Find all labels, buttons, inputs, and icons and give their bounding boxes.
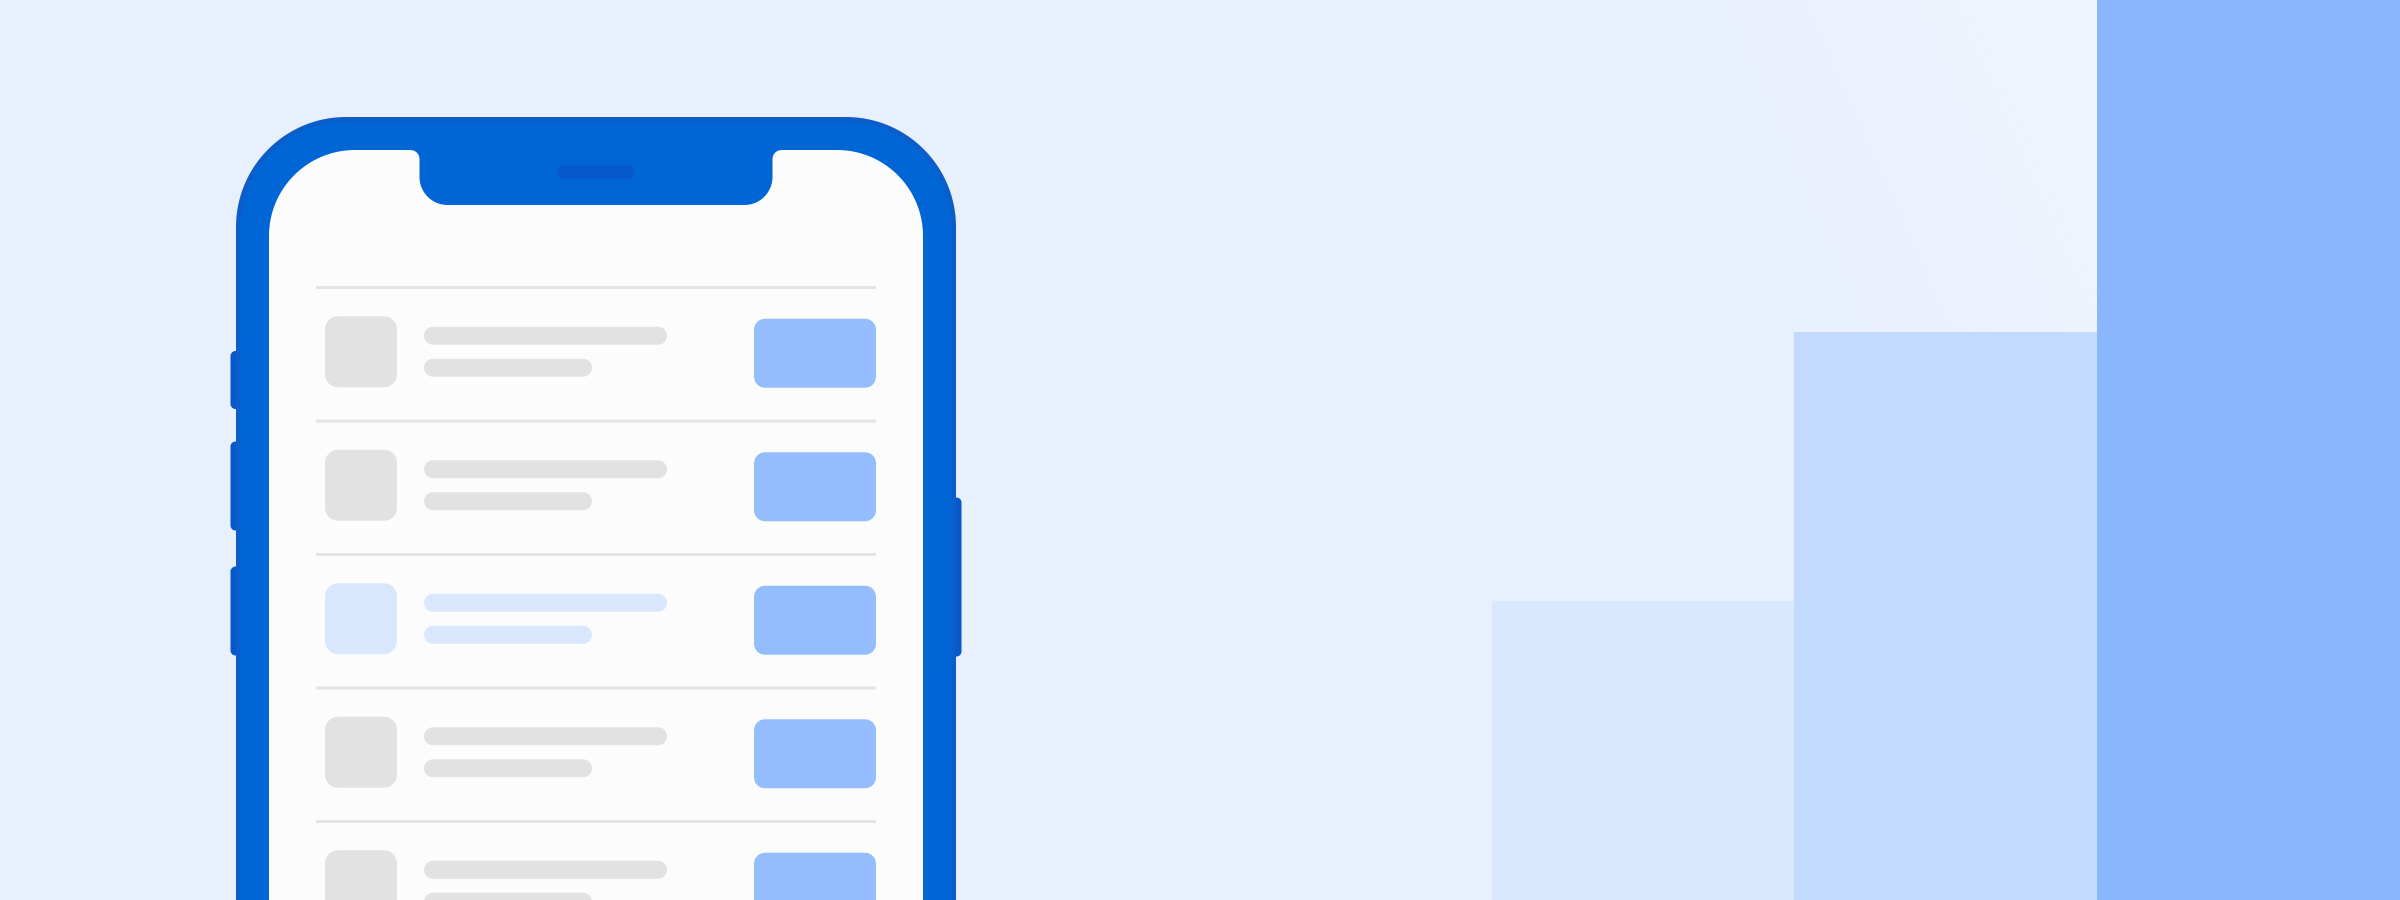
button[interactable]: List item 4 bbox=[269, 686, 923, 820]
button[interactable]: Action 4 bbox=[754, 719, 876, 788]
button[interactable]: List item 2 bbox=[269, 419, 923, 553]
button[interactable]: Action 1 bbox=[754, 319, 876, 388]
button[interactable]: List item 3 bbox=[269, 553, 923, 686]
button[interactable]: Action 2 bbox=[754, 452, 876, 521]
button[interactable]: Action 5 bbox=[754, 853, 876, 900]
button[interactable]: Action 3 bbox=[754, 586, 876, 655]
button[interactable]: List item 5 bbox=[269, 820, 923, 900]
button[interactable]: List item 1 bbox=[269, 286, 923, 419]
